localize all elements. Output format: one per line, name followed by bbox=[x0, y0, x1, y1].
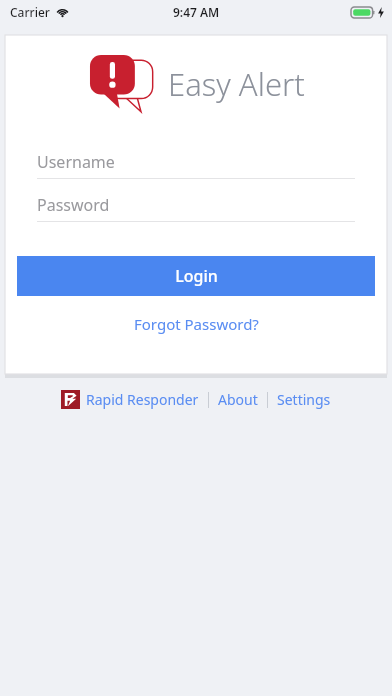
staticText: Login bbox=[175, 265, 218, 287]
staticText: Carrier bbox=[10, 4, 50, 20]
staticText: Rapid Responder bbox=[86, 390, 199, 409]
button[interactable]: Username bbox=[37, 146, 355, 179]
button[interactable]: Settings bbox=[277, 390, 331, 409]
staticText: Easy Alert bbox=[168, 63, 305, 105]
other: Rapid Responder bbox=[61, 390, 80, 409]
staticText: 9:47 AM bbox=[173, 4, 220, 20]
button[interactable]: About bbox=[218, 390, 258, 409]
button[interactable]: Password bbox=[37, 189, 355, 222]
staticText: Password bbox=[37, 194, 110, 216]
button[interactable]: Rapid Responder bbox=[61, 390, 199, 409]
button[interactable]: Forgot Password? bbox=[124, 310, 269, 338]
staticText: Username bbox=[37, 151, 115, 173]
staticText: Settings bbox=[277, 390, 331, 409]
staticText: Forgot Password? bbox=[134, 314, 259, 334]
staticText: About bbox=[218, 390, 258, 409]
button[interactable]: Login bbox=[17, 256, 375, 296]
